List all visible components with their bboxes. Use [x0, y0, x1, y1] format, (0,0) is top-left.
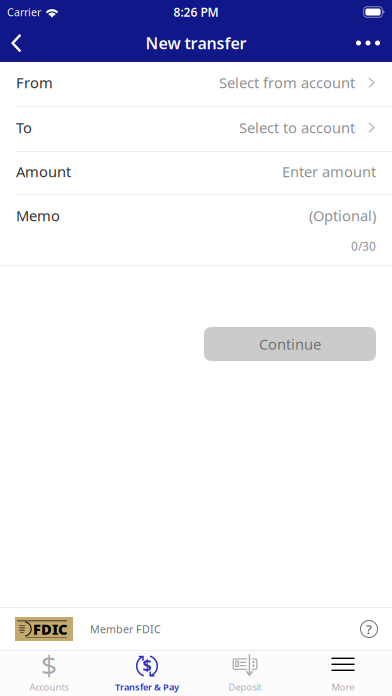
staticText: Transfer & Pay: [115, 681, 179, 693]
staticText: ?: [366, 620, 372, 638]
staticText: $: [142, 654, 151, 675]
button[interactable]: Memo: [0, 195, 392, 266]
staticText: Amount: [16, 162, 71, 181]
staticText: New transfer: [145, 32, 246, 54]
staticText: Select from account: [219, 73, 355, 92]
staticText: Carrier: [7, 5, 41, 19]
button[interactable]: More: [294, 651, 392, 696]
button[interactable]: From: [0, 62, 392, 107]
staticText: $: [41, 646, 57, 683]
button[interactable]: $: [98, 651, 196, 696]
staticText: Select to account: [239, 118, 355, 137]
button[interactable]: Deposit: [196, 651, 294, 696]
button[interactable]: More options: [338, 24, 392, 62]
staticText: Accounts: [29, 681, 68, 693]
staticText: More: [331, 681, 354, 693]
button[interactable]: $: [0, 651, 98, 696]
staticText: To: [16, 118, 32, 137]
staticText: 0/30: [351, 238, 376, 254]
staticText: Deposit: [228, 681, 261, 693]
button[interactable]: Help: [353, 613, 385, 645]
staticText: FDIC: [33, 619, 68, 639]
button[interactable]: Back: [0, 24, 44, 62]
staticText: From: [16, 73, 53, 92]
button[interactable]: Amount: [0, 152, 392, 195]
staticText: Member FDIC: [90, 622, 161, 636]
staticText: Enter amount: [282, 162, 376, 181]
button[interactable]: To: [0, 107, 392, 152]
staticText: Continue: [259, 334, 321, 354]
staticText: Memo: [16, 206, 60, 225]
staticText: 8:26 PM: [173, 4, 218, 20]
button[interactable]: Continue: [204, 327, 376, 361]
staticText: (Optional): [309, 206, 376, 225]
